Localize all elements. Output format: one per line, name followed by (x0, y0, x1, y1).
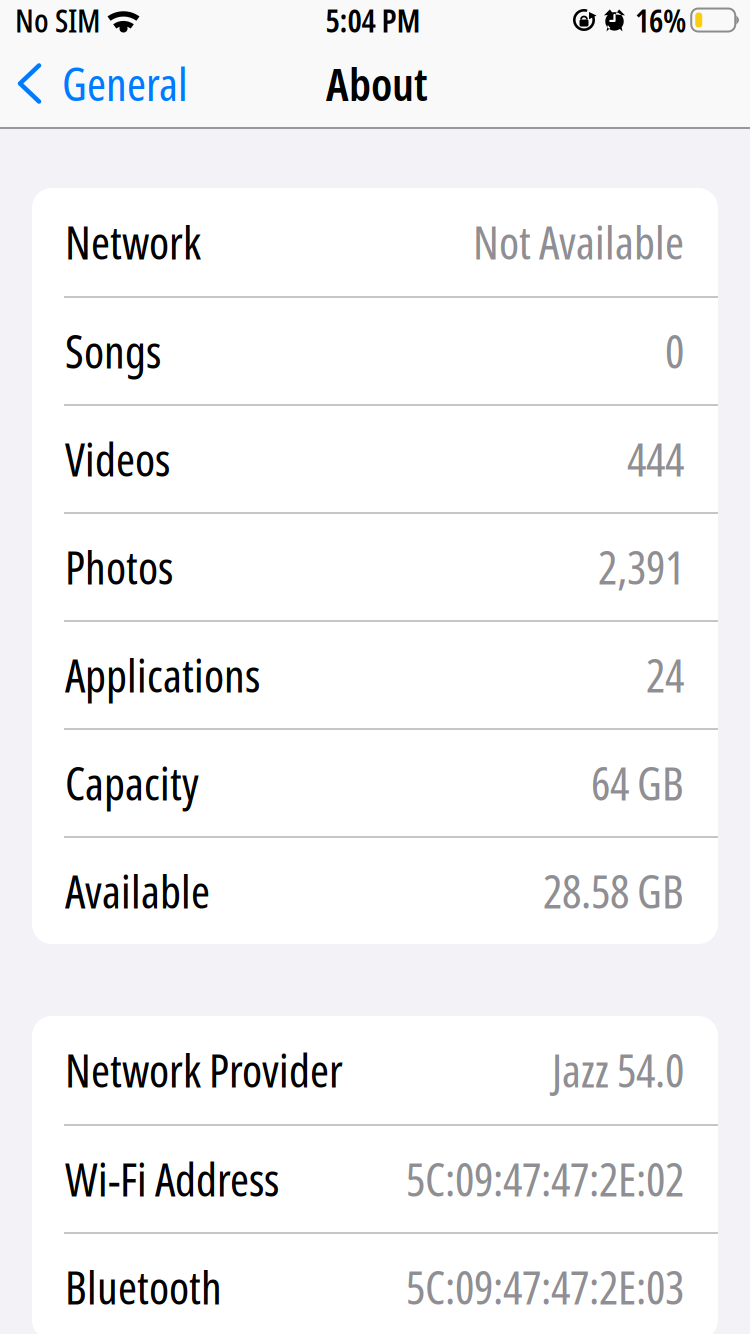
staticText: Not Available (473, 211, 684, 273)
staticText: Wi-Fi Address (65, 1148, 279, 1210)
staticText: Network Provider (65, 1039, 343, 1101)
staticText: Videos (65, 428, 170, 490)
staticText: Applications (65, 644, 260, 706)
staticText: Jazz 54.0 (552, 1039, 684, 1101)
staticText: Photos (65, 536, 173, 598)
staticText: 5C:09:47:47:2E:03 (406, 1256, 684, 1318)
staticText: 444 (627, 428, 684, 490)
button[interactable]: Back to General (0, 53, 188, 114)
staticText: No SIM (15, 0, 100, 42)
staticText: Capacity (65, 752, 199, 814)
staticText: 2,391 (598, 536, 684, 598)
staticText: 24 (646, 644, 684, 706)
staticText: 5C:09:47:47:2E:02 (406, 1148, 684, 1210)
staticText: Network (65, 211, 201, 273)
staticText: 5:04 PM (325, 0, 420, 42)
staticText: Bluetooth (65, 1256, 222, 1318)
staticText: General (62, 53, 188, 114)
staticText: 28.58 GB (543, 860, 684, 922)
staticText: Songs (65, 320, 161, 382)
staticText: 16% (635, 0, 686, 42)
staticText: About (326, 53, 428, 114)
staticText: 0 (665, 320, 684, 382)
staticText: Available (65, 860, 210, 922)
staticText: 64 GB (591, 752, 684, 814)
